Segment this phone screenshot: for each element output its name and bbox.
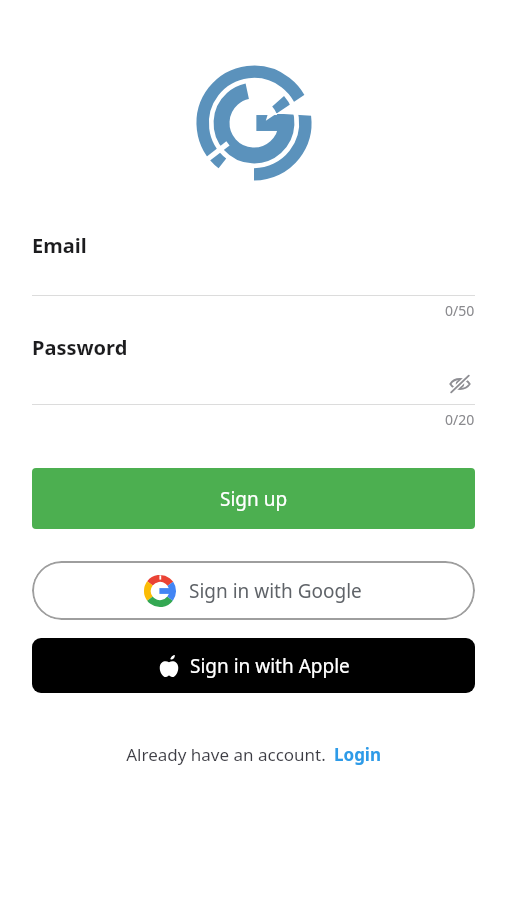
staticText: Password [32,334,128,361]
staticText: Login [334,743,382,766]
staticText: Already have an account. [126,743,326,766]
staticText: 0/20 [445,410,475,429]
staticText: Sign in with Google [189,578,362,604]
staticText: Sign in with Apple [190,653,350,679]
button[interactable]: Show password [445,369,475,399]
button[interactable]: Sign in with Google [32,561,475,620]
button[interactable]: Sign in with Apple [32,638,475,693]
staticText: 0/50 [445,301,475,320]
staticText: Sign up [220,486,288,512]
button[interactable]: Sign up [32,468,475,529]
staticText: Email [32,232,87,259]
button[interactable]: Login [334,743,382,766]
